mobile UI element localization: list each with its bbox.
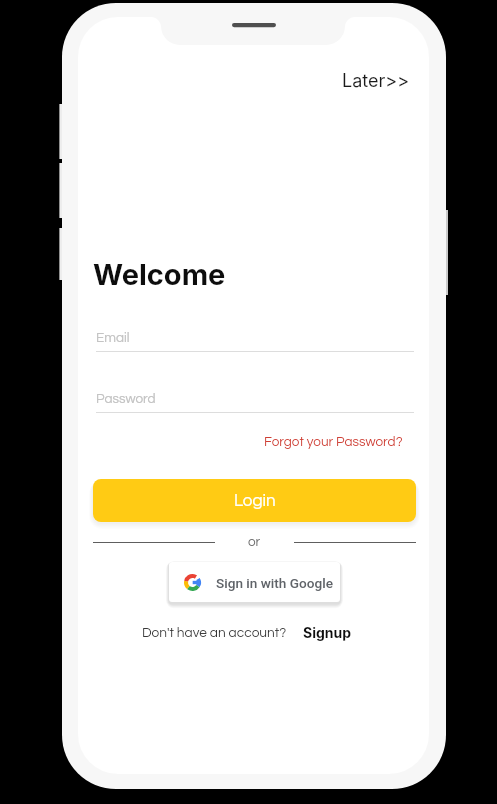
- other: Google: [184, 574, 201, 591]
- staticText: Forgot your Password?: [264, 435, 403, 449]
- staticText: Login: [234, 492, 276, 510]
- staticText: Signup: [303, 624, 352, 641]
- staticText: Email: [96, 331, 130, 345]
- staticText: or: [248, 535, 261, 549]
- staticText: Password: [96, 392, 156, 406]
- staticText: Later>>: [342, 70, 410, 92]
- button[interactable]: Email: [96, 331, 416, 352]
- button[interactable]: Google: [169, 562, 340, 602]
- staticText: Sign in with Google: [216, 575, 334, 591]
- button[interactable]: Password: [96, 392, 416, 413]
- button[interactable]: Signup: [303, 624, 352, 641]
- staticText: Welcome: [93, 257, 226, 292]
- staticText: Don't have an account?: [142, 626, 287, 640]
- button[interactable]: Later>>: [334, 64, 418, 98]
- button[interactable]: Forgot your Password?: [258, 430, 409, 454]
- button[interactable]: Login: [93, 479, 416, 522]
